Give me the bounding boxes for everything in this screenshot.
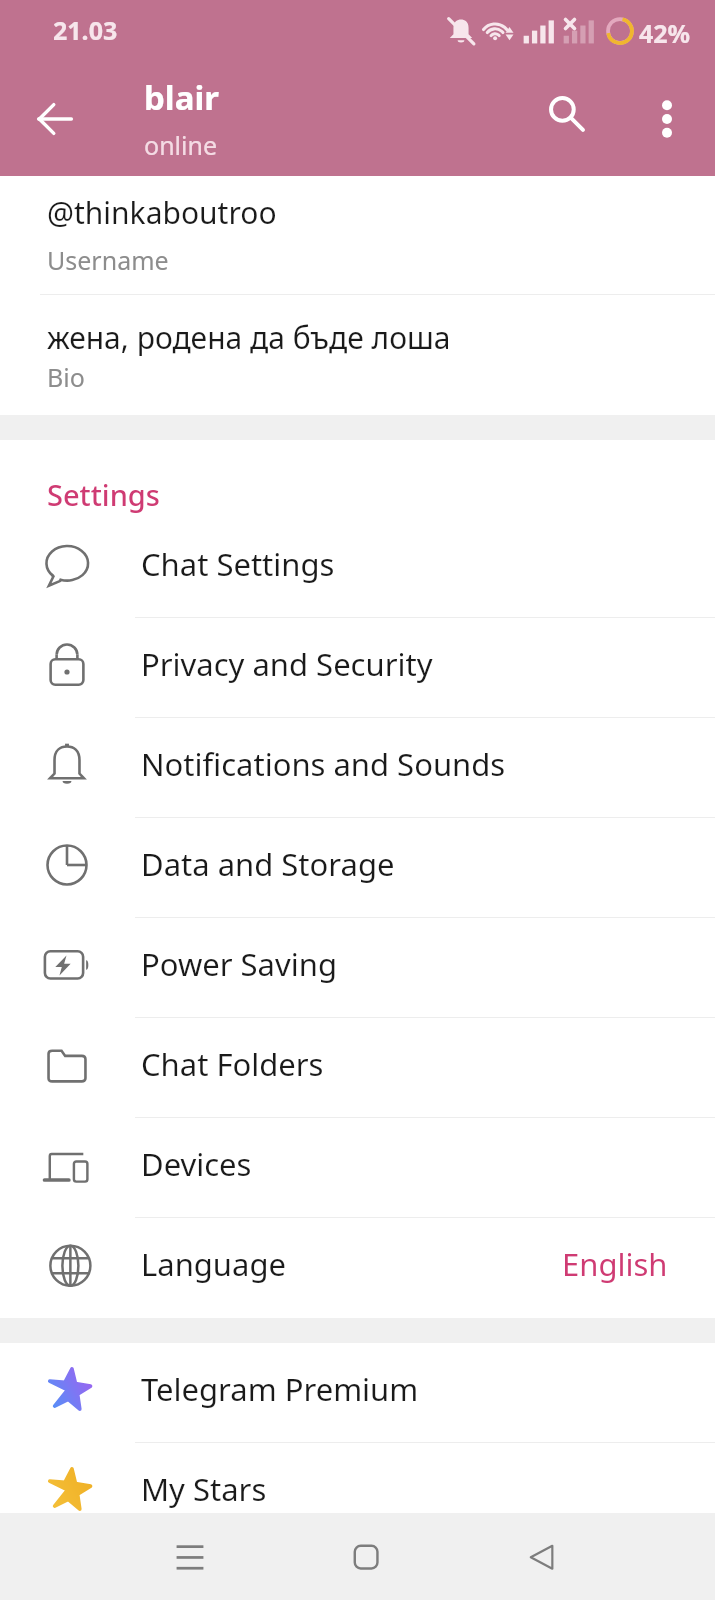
staticText: Chat Folders [141,1043,324,1085]
staticText: жена, родена да бъде лоша [47,317,451,358]
staticText: Chat Settings [141,543,335,585]
button[interactable]: Privacy and Security [0,618,715,718]
button[interactable]: Notifications and Sounds [0,718,715,818]
staticText: Power Saving [141,943,337,985]
staticText: Notifications and Sounds [141,743,506,785]
button[interactable]: Power Saving [0,918,715,1018]
staticText: My Stars [141,1468,267,1510]
button[interactable]: Recents [150,1517,230,1597]
button[interactable]: Devices [0,1118,715,1218]
staticText: Username [47,243,169,277]
staticText: Privacy and Security [141,643,433,685]
button[interactable]: Home [326,1517,406,1597]
staticText: Devices [141,1143,252,1185]
button[interactable]: Search [527,74,607,154]
staticText: Settings [47,475,160,514]
staticText: Data and Storage [141,843,395,885]
button[interactable]: Back [15,79,95,159]
staticText: Bio [47,360,85,394]
button[interactable]: жена, родена да бъде лоша [0,295,715,415]
button[interactable]: @thinkaboutroo [0,176,715,294]
button[interactable]: Language [0,1218,715,1318]
staticText: English [562,1243,668,1285]
staticText: 21.03 [53,13,118,47]
staticText: 42% [639,16,691,50]
button[interactable]: Chat Folders [0,1018,715,1118]
button[interactable]: Chat Settings [0,518,715,618]
button[interactable]: Data and Storage [0,818,715,918]
staticText: blair [144,75,220,120]
button[interactable]: Telegram Premium [0,1343,715,1443]
button[interactable]: More options [629,81,705,157]
staticText: online [144,128,218,162]
button[interactable]: My Stars [0,1443,715,1543]
staticText: Language [141,1243,286,1285]
staticText: Telegram Premium [141,1368,419,1410]
staticText: @thinkaboutroo [47,192,277,233]
button[interactable]: Back [502,1517,582,1597]
